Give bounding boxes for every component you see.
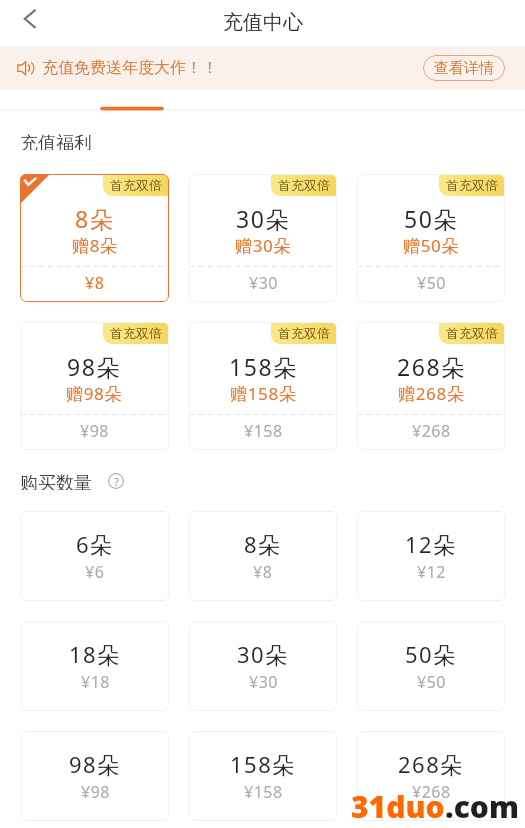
staticText: 30朵 (236, 203, 291, 234)
staticText: 98朵 (69, 749, 121, 779)
staticText: ¥268 (412, 781, 451, 803)
staticText: 首充双倍 (110, 325, 162, 341)
button[interactable]: 首充双倍 (20, 174, 169, 302)
staticText: 首充双倍 (446, 177, 498, 193)
staticText: ¥98 (80, 420, 109, 442)
staticText: 50朵 (404, 203, 459, 234)
staticText: 268朵 (398, 749, 464, 779)
staticText: 首充双倍 (278, 325, 330, 341)
staticText: ¥30 (249, 671, 278, 693)
staticText: 赠158朵 (230, 382, 297, 405)
staticText: 购买数量 (20, 472, 92, 490)
staticText: 首充双倍 (110, 177, 162, 193)
staticText: 6朵 (76, 529, 114, 559)
staticText: 充值免费送年度大作！！ (42, 58, 218, 78)
staticText: 赠98朵 (66, 382, 123, 405)
staticText: ¥158 (244, 781, 283, 803)
button[interactable]: 首充双倍 (20, 322, 169, 450)
button[interactable]: 8朵 (189, 511, 337, 601)
staticText: 98朵 (67, 351, 122, 382)
button[interactable]: 首充双倍 (189, 322, 337, 450)
staticText: 首充双倍 (278, 177, 330, 193)
staticText: 充值福利 (20, 132, 92, 150)
staticText: 158朵 (230, 749, 296, 779)
staticText: 首充双倍 (446, 325, 498, 341)
staticText: 50朵 (405, 639, 457, 669)
staticText: .com (445, 786, 519, 827)
button[interactable]: 首充双倍 (357, 174, 505, 302)
button[interactable]: 98朵 (20, 731, 169, 821)
staticText: ¥30 (249, 272, 278, 294)
staticText: 充值中心 (223, 10, 303, 35)
staticText: ¥268 (412, 420, 451, 442)
staticText: ¥8 (85, 272, 105, 294)
button[interactable]: 6朵 (20, 511, 169, 601)
button[interactable]: 首充双倍 (189, 174, 337, 302)
staticText: 赠30朵 (235, 234, 292, 257)
staticText: 8朵 (75, 203, 115, 234)
button[interactable]: Help (108, 473, 124, 489)
staticText: 查看详情 (434, 59, 494, 78)
button[interactable]: 查看详情 (423, 55, 505, 81)
staticText: ? (114, 474, 119, 489)
button[interactable]: 18朵 (20, 621, 169, 711)
button[interactable]: 268朵 (357, 731, 505, 821)
staticText: ¥18 (81, 671, 110, 693)
staticText: 31duo (351, 786, 445, 827)
staticText: 18朵 (69, 639, 121, 669)
staticText: 赠8朵 (72, 234, 118, 257)
staticText: 8朵 (244, 529, 282, 559)
staticText: ¥50 (417, 272, 446, 294)
staticText: ¥12 (417, 561, 446, 583)
staticText: ¥158 (244, 420, 283, 442)
button[interactable]: 158朵 (189, 731, 337, 821)
staticText: ¥6 (85, 561, 105, 583)
button[interactable]: 首充双倍 (357, 322, 505, 450)
button[interactable]: 50朵 (357, 621, 505, 711)
button[interactable]: 12朵 (357, 511, 505, 601)
staticText: ¥8 (253, 561, 273, 583)
staticText: 12朵 (405, 529, 457, 559)
button[interactable]: Back (10, 0, 50, 40)
staticText: ¥50 (417, 671, 446, 693)
button[interactable]: 30朵 (189, 621, 337, 711)
staticText: 158朵 (229, 351, 298, 382)
staticText: 赠50朵 (403, 234, 460, 257)
staticText: 268朵 (397, 351, 466, 382)
staticText: 赠268朵 (398, 382, 465, 405)
staticText: 30朵 (237, 639, 289, 669)
staticText: ¥98 (81, 781, 110, 803)
